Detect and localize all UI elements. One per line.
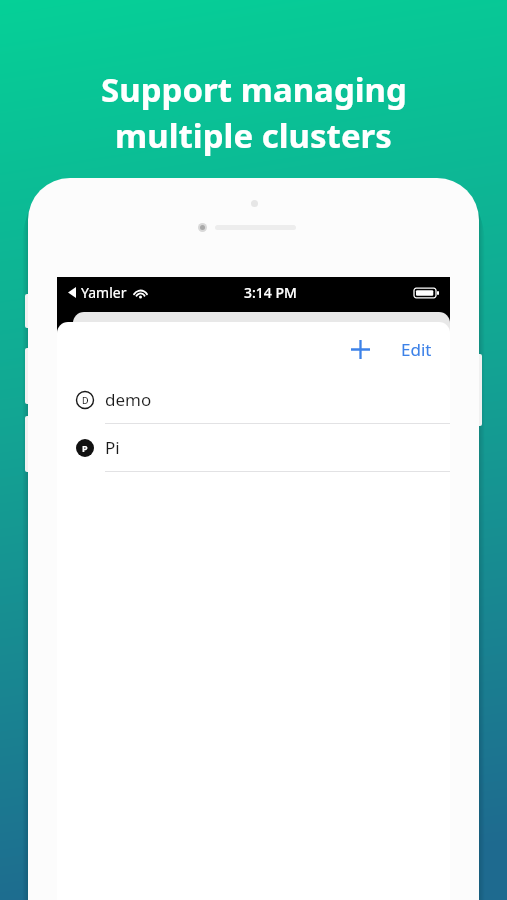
button[interactable]: P	[57, 424, 450, 471]
staticText: Support managing	[101, 67, 407, 112]
button[interactable]: D	[57, 376, 450, 423]
button[interactable]: Edit	[389, 330, 444, 369]
staticText: demo	[105, 388, 152, 411]
staticText: Yamler	[81, 283, 127, 302]
staticText: D	[82, 394, 89, 406]
staticText: Pi	[105, 436, 120, 459]
button[interactable]: Add cluster	[338, 327, 382, 371]
staticText: P	[82, 442, 88, 454]
staticText: multiple clusters	[115, 113, 392, 158]
staticText: 3:14 PM	[244, 283, 297, 302]
staticText: Edit	[401, 338, 432, 361]
